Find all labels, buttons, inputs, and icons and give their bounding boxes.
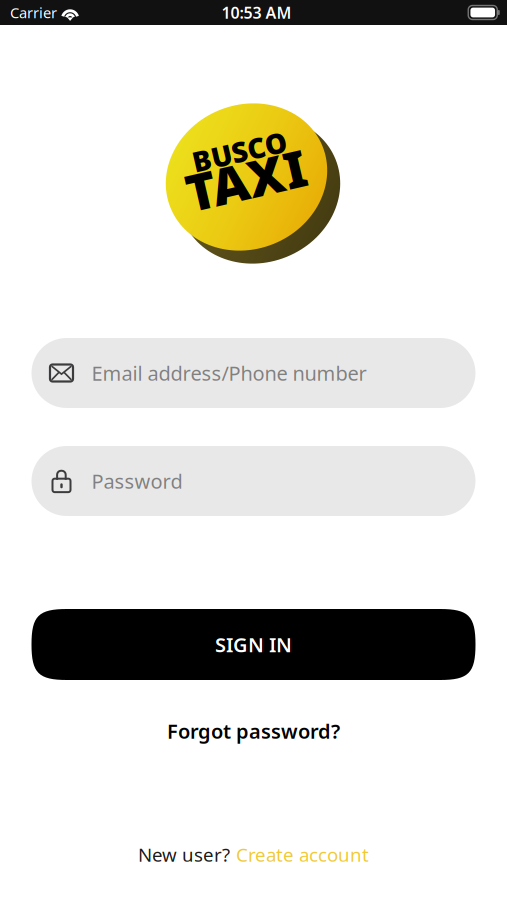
staticText: 10:53 AM: [221, 2, 291, 23]
button[interactable]: Create account: [230, 842, 369, 867]
button[interactable]: Email address/Phone number: [31, 338, 475, 408]
staticText: New user?: [138, 842, 230, 867]
button[interactable]: Password: [31, 446, 475, 516]
button[interactable]: SIGN IN: [31, 609, 475, 680]
staticText: SIGN IN: [215, 631, 292, 658]
staticText: Carrier: [10, 3, 57, 22]
staticText: Password: [91, 468, 182, 494]
staticText: Forgot password?: [167, 718, 340, 744]
staticText: TAXI: [182, 146, 304, 214]
staticText: BUSCO: [195, 132, 291, 170]
staticText: Email address/Phone number: [91, 360, 366, 386]
staticText: Create account: [236, 842, 369, 867]
button[interactable]: Forgot password?: [123, 715, 383, 747]
